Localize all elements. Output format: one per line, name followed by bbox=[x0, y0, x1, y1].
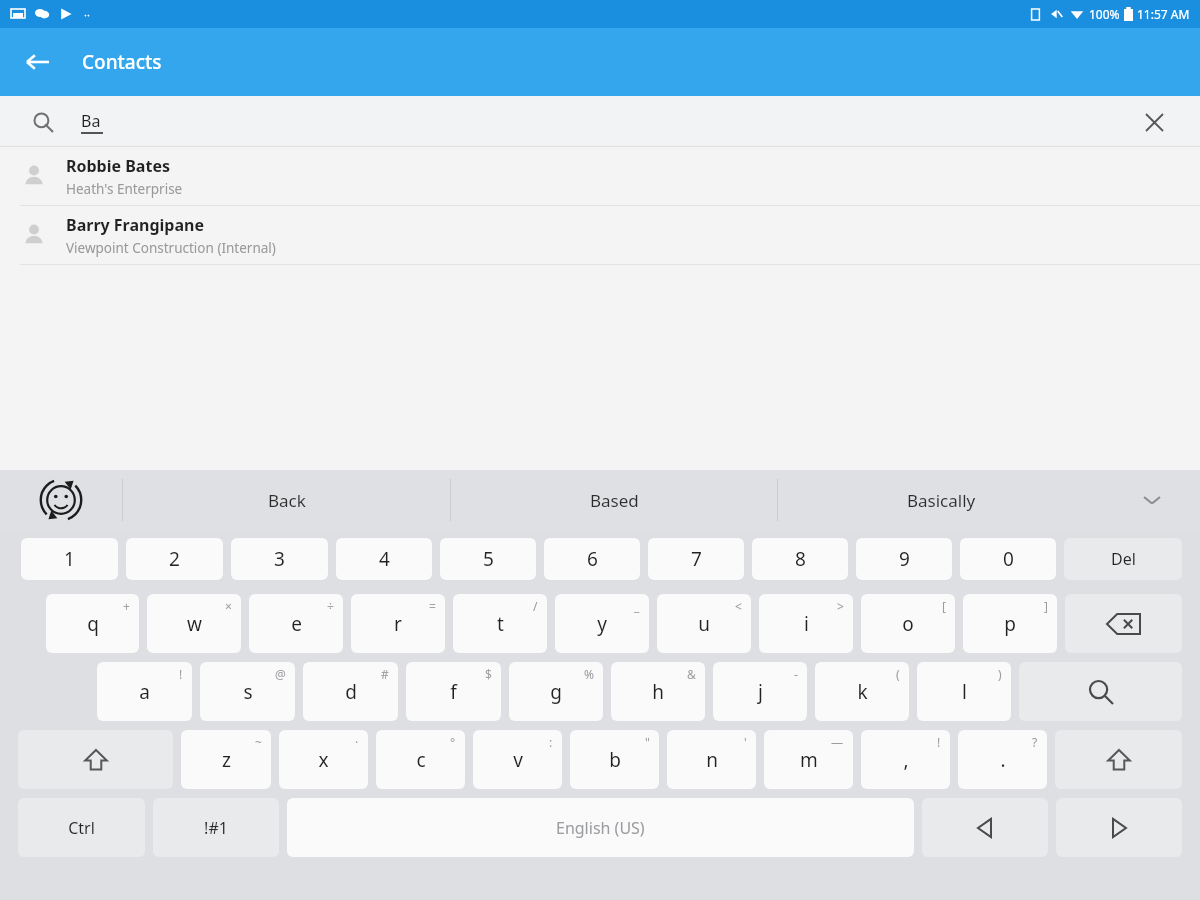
staticText: p bbox=[1004, 611, 1016, 637]
button[interactable]: _ bbox=[555, 594, 649, 653]
button[interactable]: 7 bbox=[648, 538, 744, 580]
staticText: > bbox=[837, 598, 844, 614]
staticText: 8 bbox=[795, 546, 806, 572]
button[interactable]: Move cursor right bbox=[1056, 798, 1182, 857]
staticText: Robbie Bates bbox=[66, 155, 170, 177]
button[interactable]: Robbie Bates bbox=[0, 147, 1200, 205]
button[interactable]: × bbox=[147, 594, 241, 653]
staticText: m bbox=[800, 747, 818, 773]
staticText: ° bbox=[450, 734, 456, 750]
staticText: & bbox=[687, 666, 696, 682]
button[interactable]: Shift bbox=[1055, 730, 1182, 789]
staticText: ! bbox=[937, 734, 941, 750]
button[interactable]: Barry Frangipane bbox=[0, 206, 1200, 264]
staticText: s bbox=[243, 679, 253, 705]
staticText: English (US) bbox=[556, 817, 645, 839]
staticText: Ba bbox=[81, 110, 101, 132]
staticText: < bbox=[735, 598, 742, 614]
staticText: i bbox=[804, 611, 809, 637]
button[interactable]: & bbox=[611, 662, 705, 721]
button[interactable]: 3 bbox=[231, 538, 328, 580]
button[interactable]: Basically bbox=[778, 470, 1104, 530]
button[interactable]: # bbox=[303, 662, 398, 721]
staticText: f bbox=[450, 679, 457, 705]
button[interactable]: ] bbox=[963, 594, 1057, 653]
staticText: ( bbox=[896, 666, 900, 682]
button[interactable]: ° bbox=[376, 730, 465, 789]
staticText: x bbox=[318, 747, 329, 773]
button[interactable]: Backspace bbox=[1065, 594, 1182, 653]
button[interactable]: Ctrl bbox=[18, 798, 145, 857]
button[interactable]: 4 bbox=[336, 538, 432, 580]
staticText: = bbox=[429, 598, 436, 614]
button[interactable]: [ bbox=[861, 594, 955, 653]
button[interactable]: 6 bbox=[544, 538, 640, 580]
button[interactable]: 9 bbox=[856, 538, 952, 580]
button[interactable]: Back bbox=[14, 38, 62, 86]
staticText: $ bbox=[485, 666, 492, 682]
staticText: c bbox=[416, 747, 426, 773]
staticText: ) bbox=[998, 666, 1002, 682]
staticText: [ bbox=[942, 598, 946, 614]
button[interactable]: = bbox=[351, 594, 445, 653]
button[interactable]: ( bbox=[815, 662, 909, 721]
button[interactable]: ~ bbox=[181, 730, 271, 789]
button[interactable]: 8 bbox=[752, 538, 848, 580]
button[interactable]: Clear search bbox=[1134, 102, 1174, 142]
button[interactable]: ' bbox=[667, 730, 756, 789]
button[interactable]: / bbox=[453, 594, 547, 653]
button[interactable]: % bbox=[509, 662, 603, 721]
staticText: - bbox=[794, 666, 798, 682]
staticText: b bbox=[609, 747, 621, 773]
button[interactable]: Emoji bbox=[0, 470, 122, 530]
button[interactable]: Based bbox=[451, 470, 777, 530]
button[interactable]: Hide suggestions bbox=[1104, 470, 1200, 530]
button[interactable]: · bbox=[279, 730, 368, 789]
staticText: d bbox=[345, 679, 357, 705]
button[interactable]: ÷ bbox=[249, 594, 343, 653]
button[interactable]: Del bbox=[1064, 538, 1182, 580]
button[interactable]: !#1 bbox=[153, 798, 279, 857]
button[interactable]: 2 bbox=[126, 538, 223, 580]
staticText: Basically bbox=[907, 489, 976, 512]
staticText: h bbox=[652, 679, 664, 705]
button[interactable]: ! bbox=[97, 662, 192, 721]
staticText: / bbox=[533, 598, 538, 614]
button[interactable]: $ bbox=[406, 662, 501, 721]
button[interactable]: ! bbox=[861, 730, 950, 789]
staticText: Back bbox=[268, 489, 306, 512]
button[interactable]: 1 bbox=[21, 538, 118, 580]
staticText: 5 bbox=[483, 546, 494, 572]
staticText: _ bbox=[634, 598, 640, 614]
button[interactable]: Shift bbox=[18, 730, 173, 789]
staticText: — bbox=[831, 734, 844, 750]
staticText: 1 bbox=[64, 546, 75, 572]
staticText: t bbox=[497, 611, 504, 637]
button[interactable]: 5 bbox=[440, 538, 536, 580]
staticText: l bbox=[962, 679, 967, 705]
button[interactable]: Back bbox=[123, 470, 450, 530]
button[interactable]: @ bbox=[200, 662, 295, 721]
button[interactable]: — bbox=[764, 730, 853, 789]
button[interactable]: Search bbox=[1019, 662, 1182, 721]
button[interactable]: < bbox=[657, 594, 751, 653]
staticText: z bbox=[222, 747, 231, 773]
button[interactable]: > bbox=[759, 594, 853, 653]
button[interactable]: ) bbox=[917, 662, 1011, 721]
button[interactable]: Move cursor left bbox=[922, 798, 1048, 857]
button[interactable]: ? bbox=[958, 730, 1047, 789]
staticText: v bbox=[513, 747, 523, 773]
staticText: q bbox=[87, 611, 99, 637]
button[interactable]: " bbox=[570, 730, 659, 789]
staticText: !#1 bbox=[204, 817, 228, 839]
button[interactable]: - bbox=[713, 662, 807, 721]
button[interactable]: 0 bbox=[960, 538, 1056, 580]
staticText: 4 bbox=[379, 546, 390, 572]
staticText: Based bbox=[590, 489, 639, 512]
button[interactable]: : bbox=[473, 730, 562, 789]
staticText: ~ bbox=[255, 734, 262, 750]
staticText: a bbox=[139, 679, 150, 705]
button[interactable]: + bbox=[46, 594, 139, 653]
staticText: 3 bbox=[274, 546, 285, 572]
button[interactable]: English (US) bbox=[287, 798, 914, 857]
